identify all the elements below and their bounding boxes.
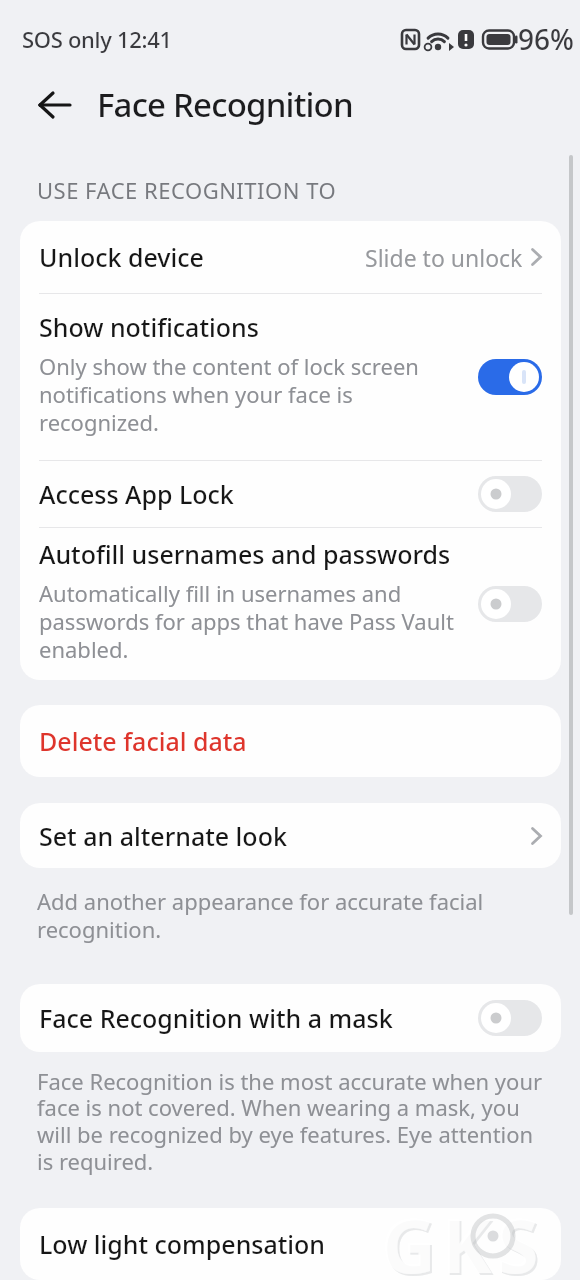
staticText: Delete facial data	[39, 724, 247, 758]
staticText: Automatically fill in usernames and pass…	[39, 578, 454, 664]
staticText: GKS	[381, 1192, 544, 1280]
staticText: Set an alternate look	[39, 819, 287, 853]
staticText: Slide to unlock	[365, 242, 523, 273]
staticText: USE FACE RECOGNITION TO	[37, 175, 337, 205]
staticText: Autofill usernames and passwords	[39, 537, 451, 571]
staticText: SOS only 12:41	[22, 24, 172, 54]
staticText: Only show the content of lock screen not…	[39, 351, 419, 437]
staticText: Unlock device	[39, 240, 204, 274]
staticText: Low light compensation	[39, 1227, 326, 1261]
staticText: Access App Lock	[39, 477, 234, 511]
staticText: Show notifications	[39, 310, 259, 344]
staticText: Face Recognition is the most accurate wh…	[37, 1066, 543, 1177]
staticText: Add another appearance for accurate faci…	[37, 886, 484, 944]
staticText: 96%	[518, 20, 574, 58]
staticText: GKS	[383, 1194, 546, 1280]
staticText: Face Recognition with a mask	[39, 1001, 393, 1035]
staticText: Face Recognition	[97, 82, 353, 127]
